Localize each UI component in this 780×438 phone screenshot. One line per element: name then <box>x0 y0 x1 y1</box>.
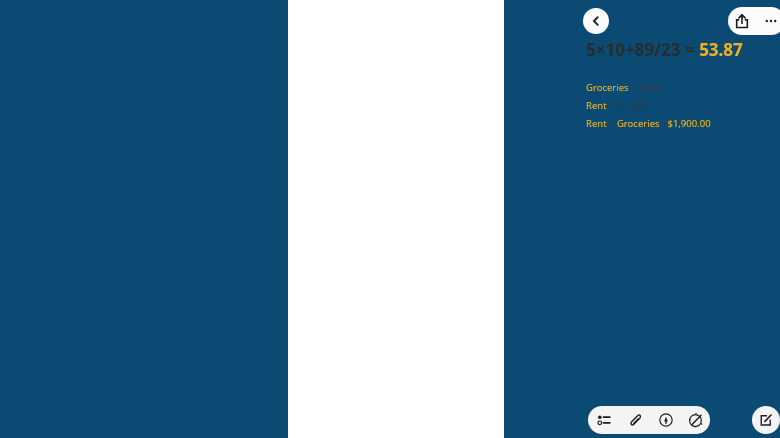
button[interactable]: Share <box>728 7 756 35</box>
staticText: Rent + Groceries =$1,900.00 <box>586 117 711 130</box>
button[interactable]: Smart pen <box>681 406 710 434</box>
button[interactable]: Checklist <box>588 406 619 434</box>
staticText: Rent = $1,500 <box>586 99 647 112</box>
staticText: Groceries = $400 <box>586 81 661 94</box>
button[interactable]: Draw <box>650 406 681 434</box>
button[interactable]: Back <box>583 8 609 34</box>
button[interactable]: More options <box>756 7 780 35</box>
button[interactable]: Attach file <box>619 406 650 434</box>
button[interactable]: New note <box>752 406 780 434</box>
staticText: 5×10+89/23 = 53.87 <box>586 38 743 61</box>
